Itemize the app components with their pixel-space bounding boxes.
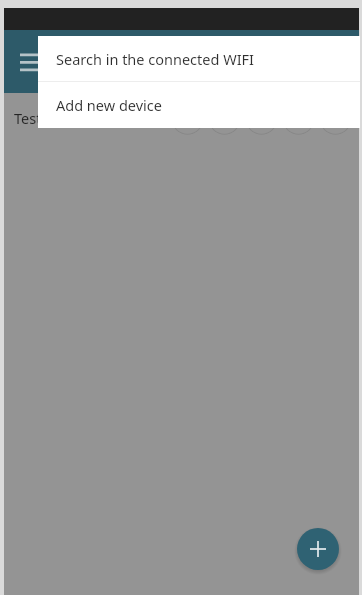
staticText: Add new device: [56, 95, 162, 115]
staticText: Search in the connected WIFI: [56, 49, 255, 69]
button[interactable]: Delete: [319, 102, 352, 135]
button[interactable]: View: [171, 102, 204, 135]
button[interactable]: Open navigation menu: [10, 40, 54, 84]
button[interactable]: Details: [282, 102, 315, 135]
button[interactable]: Favorite: [245, 102, 278, 135]
button[interactable]: Add device: [297, 528, 339, 570]
button[interactable]: Add new device: [38, 82, 360, 128]
staticText: Test_2.0: [14, 108, 69, 128]
button[interactable]: Search in the connected WIFI: [38, 36, 360, 81]
button[interactable]: Edit: [208, 102, 241, 135]
